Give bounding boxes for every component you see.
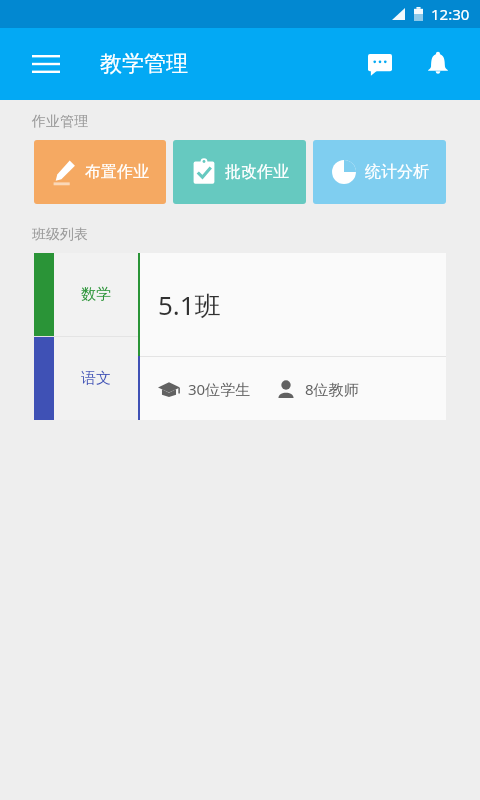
staticText: 教学管理 [100, 50, 188, 78]
button[interactable]: Notifications [416, 42, 460, 86]
staticText: 语文 [81, 369, 111, 388]
button[interactable]: 5.1班 [138, 253, 446, 356]
button[interactable]: 统计分析 [313, 140, 446, 204]
button[interactable]: 30位学生 [138, 356, 446, 420]
staticText: 布置作业 [85, 162, 149, 182]
button[interactable]: 批改作业 [173, 140, 306, 204]
button[interactable]: Menu [24, 42, 68, 86]
staticText: 批改作业 [225, 162, 289, 182]
staticText: 作业管理 [32, 113, 88, 131]
button[interactable]: Messages [358, 42, 402, 86]
staticText: 统计分析 [365, 162, 429, 182]
button[interactable]: 语文 [34, 337, 138, 420]
staticText: 30位学生 [188, 379, 251, 399]
button[interactable]: 布置作业 [34, 140, 166, 204]
staticText: 班级列表 [32, 226, 88, 244]
staticText: 8位教师 [305, 379, 359, 399]
button[interactable]: 数学 [34, 253, 138, 336]
staticText: 数学 [81, 285, 111, 304]
staticText: 12:30 [431, 4, 470, 24]
staticText: 5.1班 [158, 287, 221, 323]
